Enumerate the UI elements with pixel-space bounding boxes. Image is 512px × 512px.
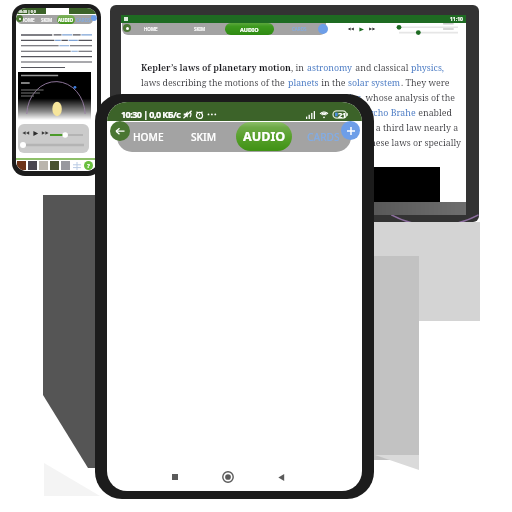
button[interactable]: SKIM xyxy=(181,122,225,152)
staticText: AUDIO xyxy=(240,26,259,33)
staticText: AUDIO xyxy=(58,17,74,23)
staticText: planets xyxy=(288,77,319,89)
button[interactable]: HOME xyxy=(140,23,162,35)
button[interactable]: Home xyxy=(222,471,234,483)
staticText: derived by the German astronomer xyxy=(141,92,292,104)
button[interactable]: CARDS xyxy=(301,122,345,152)
staticText: solar system xyxy=(348,77,401,89)
staticText: and classical xyxy=(353,62,411,74)
staticText: astronomy xyxy=(307,62,353,74)
button[interactable]: CARDS xyxy=(288,23,311,35)
staticText: laws describing the motions of the xyxy=(141,77,288,89)
button[interactable]: AUDIO xyxy=(236,122,292,151)
staticText: 10:30 | 0,0 xyxy=(18,9,36,14)
staticText: HOME xyxy=(144,26,158,32)
button[interactable]: Help xyxy=(84,161,93,170)
button[interactable]: Add xyxy=(91,15,97,21)
button[interactable]: Add xyxy=(341,121,360,140)
staticText: decade later, in 1618. Kepler himself ne… xyxy=(141,137,462,149)
staticText: CARDS xyxy=(292,26,307,32)
button[interactable]: Back xyxy=(275,471,287,483)
staticText: SKIM xyxy=(194,26,206,32)
staticText: CARDS xyxy=(307,130,340,144)
button[interactable]: SKIM xyxy=(38,15,56,24)
staticText: SKIM xyxy=(191,130,216,144)
staticText: Tycho Brahe xyxy=(363,107,416,119)
button[interactable]: AUDIO xyxy=(225,23,274,35)
button[interactable]: HOME xyxy=(19,15,37,24)
staticText: him to announce his first two laws in th… xyxy=(141,122,459,134)
button[interactable]: Recents xyxy=(169,471,181,483)
button[interactable]: AUDIO xyxy=(57,15,75,24)
staticText: CARDS xyxy=(76,17,91,23)
staticText: Kepler’s laws of planetary motion xyxy=(141,62,291,74)
staticText: SKIM xyxy=(41,17,53,23)
staticText: , whose analysis of the xyxy=(361,92,456,104)
staticText: HOME xyxy=(21,17,35,23)
staticText: in the xyxy=(319,77,348,89)
button[interactable]: HOME xyxy=(126,122,170,152)
staticText: ? xyxy=(87,162,90,170)
button[interactable]: Back xyxy=(123,24,131,32)
staticText: Johannes Kepler xyxy=(292,92,361,104)
button[interactable]: Add xyxy=(318,24,328,34)
staticText: observations of the 16th-century Danish … xyxy=(141,107,363,119)
button[interactable]: Back xyxy=(16,15,23,22)
staticText: HOME xyxy=(133,130,164,144)
staticText: enabled xyxy=(416,107,452,119)
button[interactable]: Back xyxy=(110,121,130,141)
button[interactable] xyxy=(17,161,26,170)
staticText: 10:30 | 0,0 KБ/с xyxy=(121,108,181,120)
staticText: AUDIO xyxy=(243,128,286,145)
staticText: . They were xyxy=(401,77,450,89)
staticText: physics, xyxy=(411,62,445,74)
staticText: , in xyxy=(291,62,307,74)
staticText: 21 xyxy=(338,110,346,119)
button[interactable]: CARDS xyxy=(74,15,93,24)
staticText: 11:10 xyxy=(450,16,463,23)
button[interactable]: SKIM xyxy=(189,23,211,35)
